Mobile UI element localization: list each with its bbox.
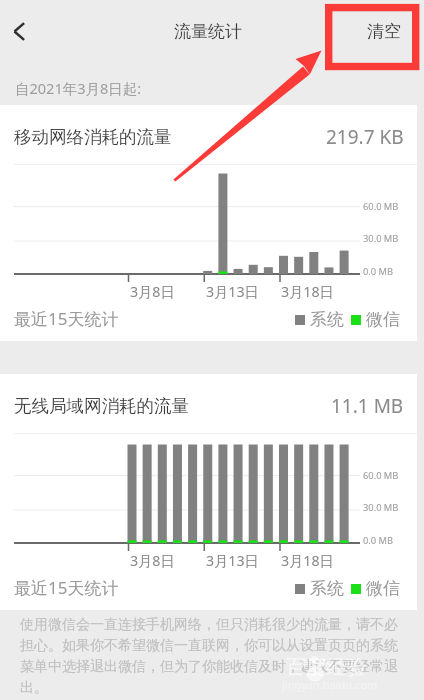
staticText: 30.0 MB bbox=[363, 232, 399, 245]
staticText: 3月18日 bbox=[281, 282, 334, 301]
staticText: 百度经验 bbox=[286, 655, 366, 680]
staticText: 系统 bbox=[310, 309, 344, 330]
staticText: 流量统计 bbox=[174, 21, 242, 42]
staticText: 3月8日 bbox=[130, 551, 175, 570]
staticText: 219.7 KB bbox=[326, 124, 404, 150]
button[interactable]: Back bbox=[0, 0, 46, 57]
button[interactable]: 清空 bbox=[367, 0, 401, 57]
staticText: 系统 bbox=[310, 578, 344, 599]
staticText: 3月13日 bbox=[206, 282, 259, 301]
staticText: 11.1 MB bbox=[331, 393, 404, 419]
staticText: 60.0 MB bbox=[363, 200, 399, 213]
staticText: 无线局域网消耗的流量 bbox=[14, 395, 189, 417]
staticText: 自2021年3月8日起: bbox=[15, 78, 142, 98]
staticText: 30.0 MB bbox=[363, 501, 399, 514]
staticText: 微信 bbox=[366, 578, 400, 599]
staticText: 最近15天统计 bbox=[14, 307, 119, 330]
staticText: 使用微信会一直连接手机网络，但只消耗很少的流量，请不必担心。如果你不希望微信一直… bbox=[20, 616, 402, 697]
staticText: 0.0 MB bbox=[363, 265, 394, 278]
staticText: 移动网络消耗的流量 bbox=[14, 126, 172, 148]
staticText: 60.0 MB bbox=[363, 469, 399, 482]
staticText: 3月18日 bbox=[281, 551, 334, 570]
staticText: 清空 bbox=[367, 21, 401, 42]
staticText: 3月13日 bbox=[206, 551, 259, 570]
staticText: 最近15天统计 bbox=[14, 576, 119, 599]
staticText: 0.0 MB bbox=[363, 534, 394, 547]
staticText: 3月8日 bbox=[130, 282, 175, 301]
staticText: 微信 bbox=[366, 309, 400, 330]
